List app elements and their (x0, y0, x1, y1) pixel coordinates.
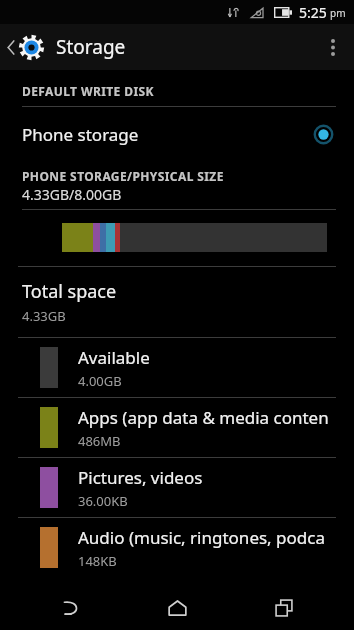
staticText: Apps (app data & media conten (78, 406, 329, 429)
staticText: 4.33GB (22, 307, 66, 325)
staticText: PHONE STORAGE/PHYSICAL SIZE (22, 168, 224, 184)
staticText: 4.33GB/8.00GB (22, 185, 122, 204)
staticText: Storage (56, 34, 126, 60)
button[interactable]: Total space (0, 267, 354, 337)
staticText: Phone storage (22, 123, 314, 146)
staticText: Total space (22, 279, 117, 304)
staticText: Pictures, videos (78, 466, 203, 489)
button[interactable]: More options (312, 24, 354, 70)
button[interactable]: Back (33, 585, 107, 630)
button[interactable]: Pictures, videos (0, 458, 354, 517)
staticText: Audio (music, ringtones, podca (78, 526, 325, 549)
staticText: 5:25 (299, 3, 327, 22)
staticText: 36.00KB (78, 492, 128, 510)
staticText: Available (78, 346, 150, 369)
button[interactable]: Phone storage (0, 107, 354, 161)
staticText: 148KB (78, 552, 117, 570)
button[interactable]: Available (0, 338, 354, 397)
staticText: pm (330, 6, 346, 20)
button[interactable]: Audio (music, ringtones, podca (0, 518, 354, 577)
button[interactable]: Navigate up (0, 24, 134, 70)
staticText: 4.00GB (78, 372, 122, 390)
button[interactable]: Apps (app data & media conten (0, 398, 354, 457)
button[interactable]: Recent apps (247, 585, 321, 630)
staticText: 486MB (78, 432, 121, 450)
staticText: DEFAULT WRITE DISK (22, 83, 154, 99)
button[interactable]: Home (140, 585, 214, 630)
